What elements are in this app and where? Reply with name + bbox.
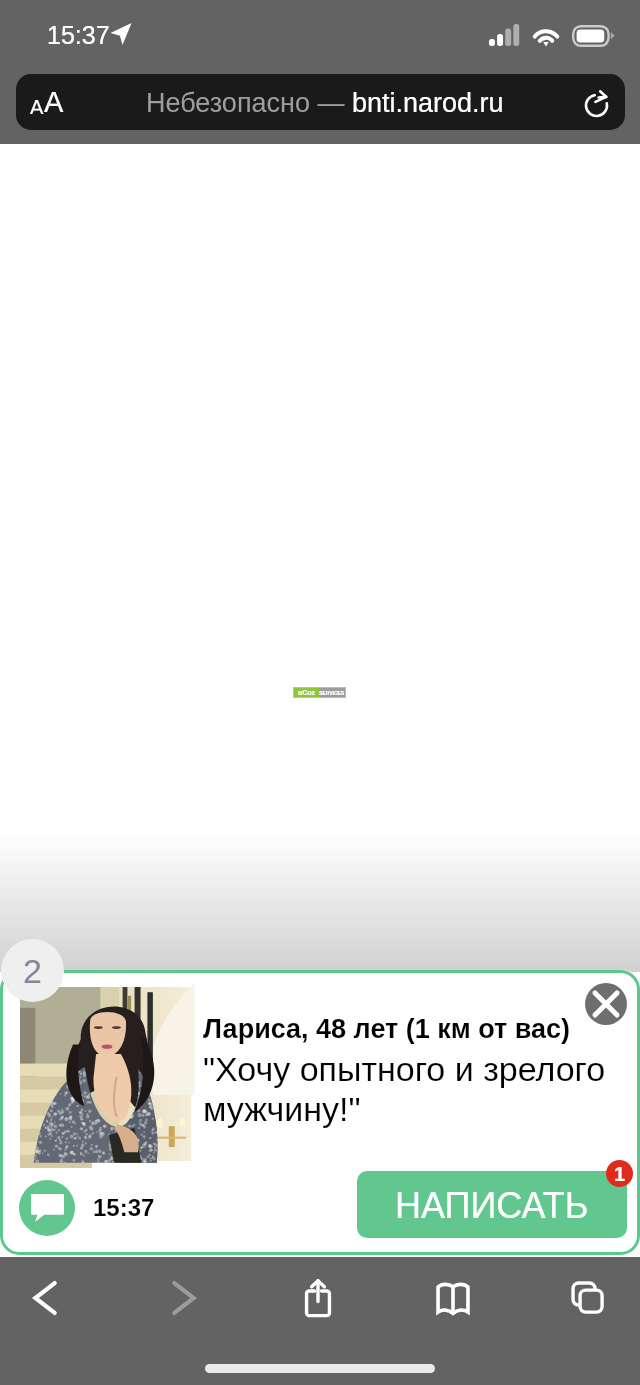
staticText: A	[30, 96, 44, 118]
button[interactable]: Text size options	[16, 74, 625, 130]
staticText: 2	[23, 952, 42, 990]
button[interactable]: Close advertisement	[585, 983, 627, 1025]
button[interactable]: Bookmarks	[423, 1268, 483, 1328]
staticText: 15:37	[47, 21, 110, 49]
staticText: SERVICES	[319, 690, 345, 696]
staticText: uCoz	[298, 689, 316, 697]
staticText: A	[44, 86, 64, 118]
button[interactable]: Tabs	[558, 1268, 618, 1328]
staticText: НАПИСАТЬ	[395, 1185, 589, 1225]
button[interactable]: Forward	[154, 1268, 214, 1328]
staticText: "Хочу опытного и зрелого мужчину!"	[203, 1050, 623, 1128]
button[interactable]: Лариса, 48 лет (1 км от вас)	[0, 970, 640, 1255]
button[interactable]: НАПИСАТЬ	[357, 1171, 627, 1238]
button[interactable]: uCoz services	[294, 688, 345, 697]
button[interactable]: Open chat	[19, 1180, 75, 1236]
button[interactable]: Reload page	[582, 86, 614, 118]
staticText: 1	[614, 1163, 626, 1185]
staticText: bnti.narod.ru	[352, 88, 504, 118]
staticText: 15:37	[93, 1194, 155, 1221]
button[interactable]: Back	[15, 1268, 75, 1328]
staticText: Небезопасно —	[146, 88, 352, 118]
staticText: Лариса, 48 лет (1 км от вас)	[203, 1014, 571, 1044]
button[interactable]: Text size options	[30, 86, 64, 118]
button[interactable]: Share	[288, 1268, 348, 1328]
